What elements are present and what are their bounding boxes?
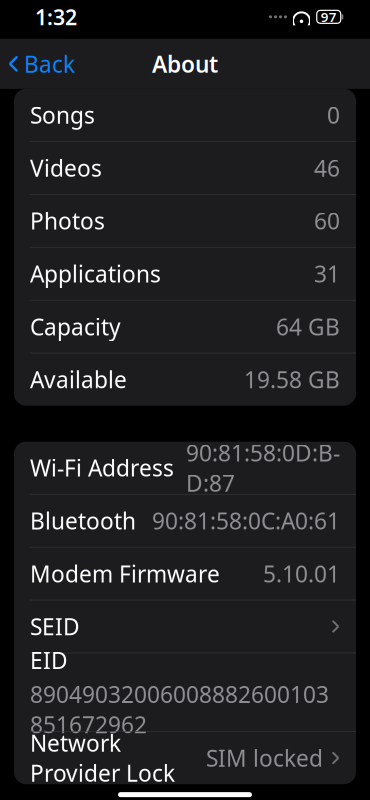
staticText: Bluetooth <box>30 506 136 536</box>
staticText: 90:81:58:0C:A0:61 <box>152 506 340 536</box>
staticText: Songs <box>30 100 95 130</box>
button[interactable]: Network Provider Lock <box>14 732 356 784</box>
staticText: Photos <box>30 206 105 236</box>
staticText: Network Provider Lock <box>30 728 175 788</box>
staticText: 5.10.01 <box>263 558 340 589</box>
staticText: SEID <box>30 611 80 641</box>
staticText: Back <box>24 49 75 79</box>
staticText: Capacity <box>30 311 121 342</box>
staticText: 1:32 <box>35 3 77 31</box>
staticText: 31 <box>314 259 340 289</box>
staticText: Videos <box>30 153 102 183</box>
staticText: Modem Firmware <box>30 558 220 589</box>
staticText: Available <box>30 364 127 394</box>
staticText: SIM locked <box>206 743 323 773</box>
button[interactable]: Back <box>0 41 83 87</box>
staticText: 60 <box>314 206 340 236</box>
staticText: 46 <box>314 153 340 183</box>
staticText: About <box>152 49 218 79</box>
staticText: 97 <box>321 8 337 26</box>
staticText: 90:81:58:0D:BD:87 <box>186 438 340 498</box>
staticText: Applications <box>30 259 161 289</box>
staticText: 19.58 GB <box>244 364 340 394</box>
staticText: 64 GB <box>276 311 340 342</box>
staticText: 89049032006008882600103851672962 <box>30 679 329 739</box>
button[interactable]: SEID <box>14 600 356 653</box>
staticText: Wi-Fi Address <box>30 453 174 483</box>
staticText: EID <box>30 645 68 675</box>
staticText: 0 <box>327 100 340 130</box>
